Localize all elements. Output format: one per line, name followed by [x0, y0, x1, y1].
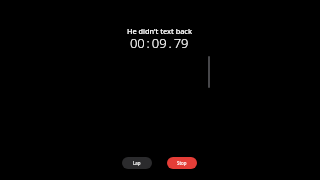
button[interactable]: Stop [167, 157, 197, 169]
staticText: Lap [133, 160, 141, 166]
staticText: Stop [177, 160, 187, 166]
staticText: He didn’t text back [109, 26, 210, 36]
button[interactable]: Lap [122, 157, 152, 169]
